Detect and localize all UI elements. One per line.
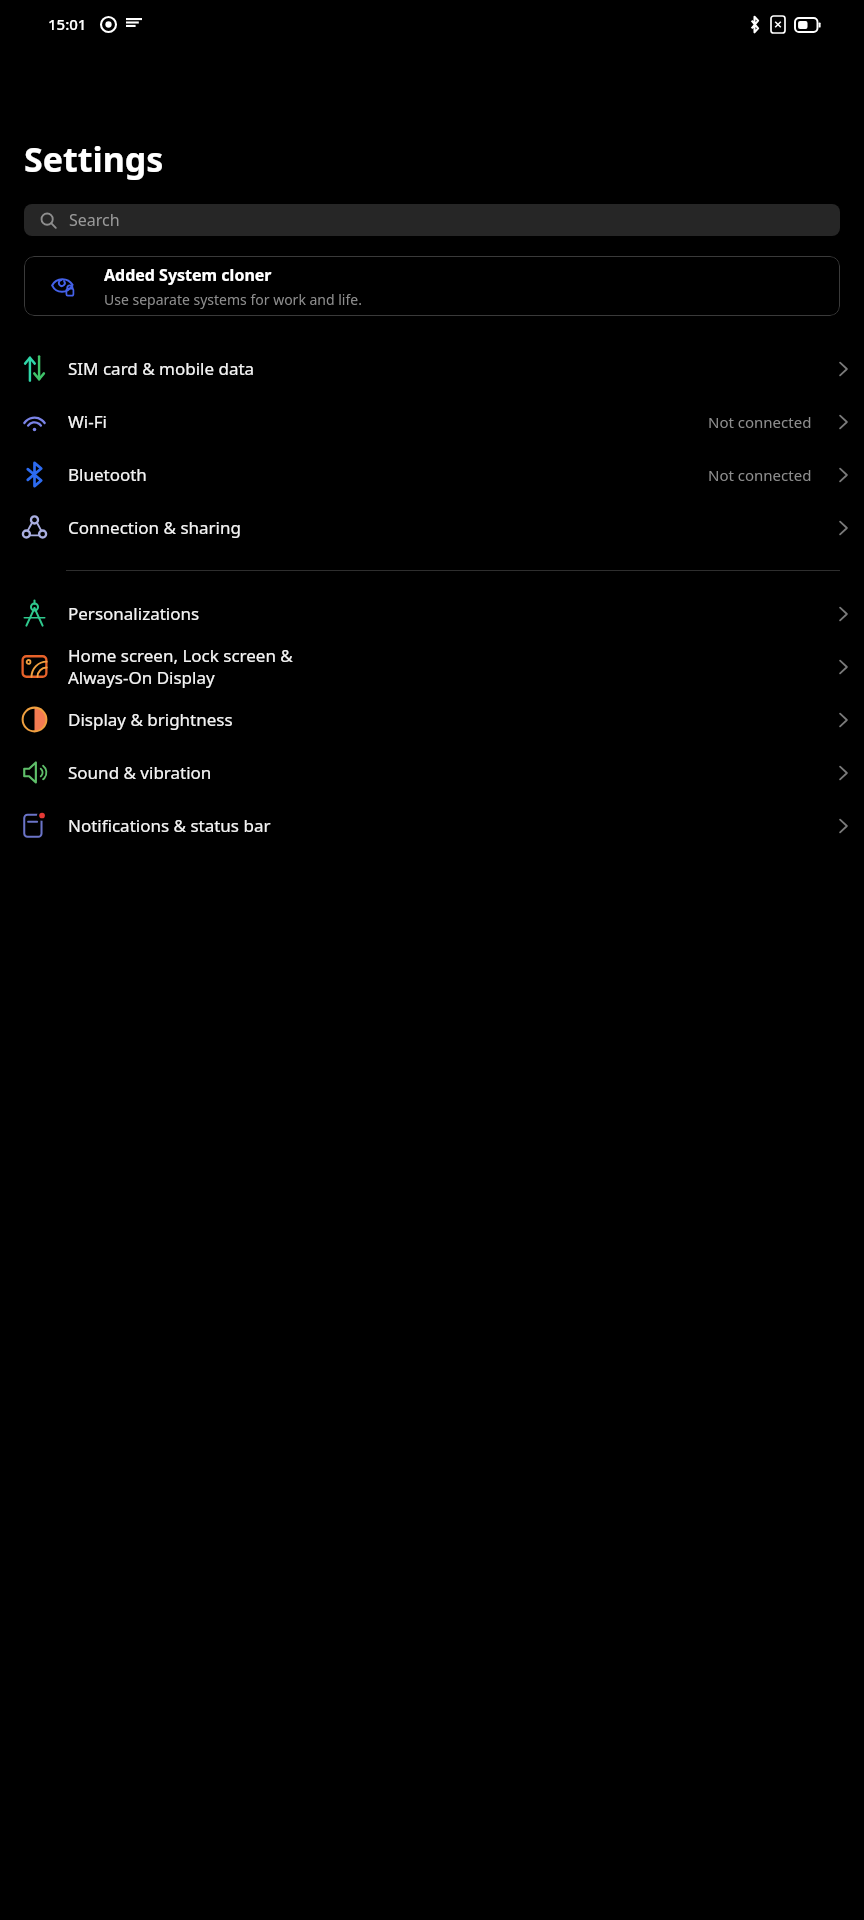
staticText: Use separate systems for work and life. (104, 290, 362, 309)
staticText: Not connected (708, 412, 812, 432)
staticText: Notifications & status bar (68, 814, 822, 837)
button[interactable]: Display (0, 693, 864, 746)
button[interactable]: Personalizations (0, 587, 864, 640)
button[interactable]: Bluetooth (0, 448, 864, 501)
staticText: Settings (24, 136, 164, 182)
staticText: Home screen, Lock screen & Always-On Dis… (68, 644, 822, 689)
staticText: 15:01 (48, 14, 87, 34)
staticText: Bluetooth (68, 463, 708, 486)
staticText: Not connected (708, 465, 812, 485)
button[interactable]: Added System cloner (24, 256, 840, 316)
button[interactable]: Sound (0, 746, 864, 799)
staticText: SIM card & mobile data (68, 357, 822, 380)
button[interactable]: Notifications (0, 799, 864, 852)
button[interactable]: Search (24, 204, 840, 236)
staticText: Display & brightness (68, 708, 822, 731)
staticText: Sound & vibration (68, 761, 822, 784)
staticText: Personalizations (68, 602, 822, 625)
button[interactable]: Wi-Fi (0, 395, 864, 448)
staticText: Search (69, 209, 120, 231)
button[interactable]: Home screen (0, 640, 864, 693)
staticText: Connection & sharing (68, 516, 822, 539)
staticText: Wi-Fi (68, 410, 708, 433)
staticText: Added System cloner (104, 264, 272, 286)
button[interactable]: SIM (0, 342, 864, 395)
button[interactable]: Connection (0, 501, 864, 554)
